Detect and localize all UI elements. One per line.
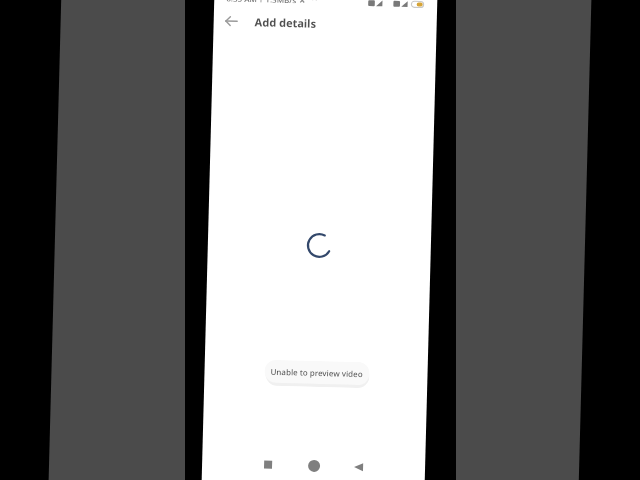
button[interactable]: Back [344,453,372,480]
staticText: Add details [254,14,317,31]
button[interactable]: Back [217,7,244,34]
staticText: Unable to preview video [270,366,364,379]
button[interactable]: Home [300,452,328,480]
staticText: 6:35 AM | 1.3MB/s [226,0,297,3]
button[interactable]: Recents [254,450,282,479]
